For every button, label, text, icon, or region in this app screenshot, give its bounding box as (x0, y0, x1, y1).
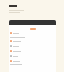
button[interactable] (9, 32, 56, 34)
button[interactable]: Primary action (30, 28, 36, 30)
button[interactable] (9, 60, 56, 62)
button[interactable] (9, 55, 56, 57)
button[interactable] (9, 50, 56, 52)
button[interactable] (9, 40, 56, 42)
button[interactable]: App bar (9, 20, 56, 25)
button[interactable] (9, 45, 56, 47)
